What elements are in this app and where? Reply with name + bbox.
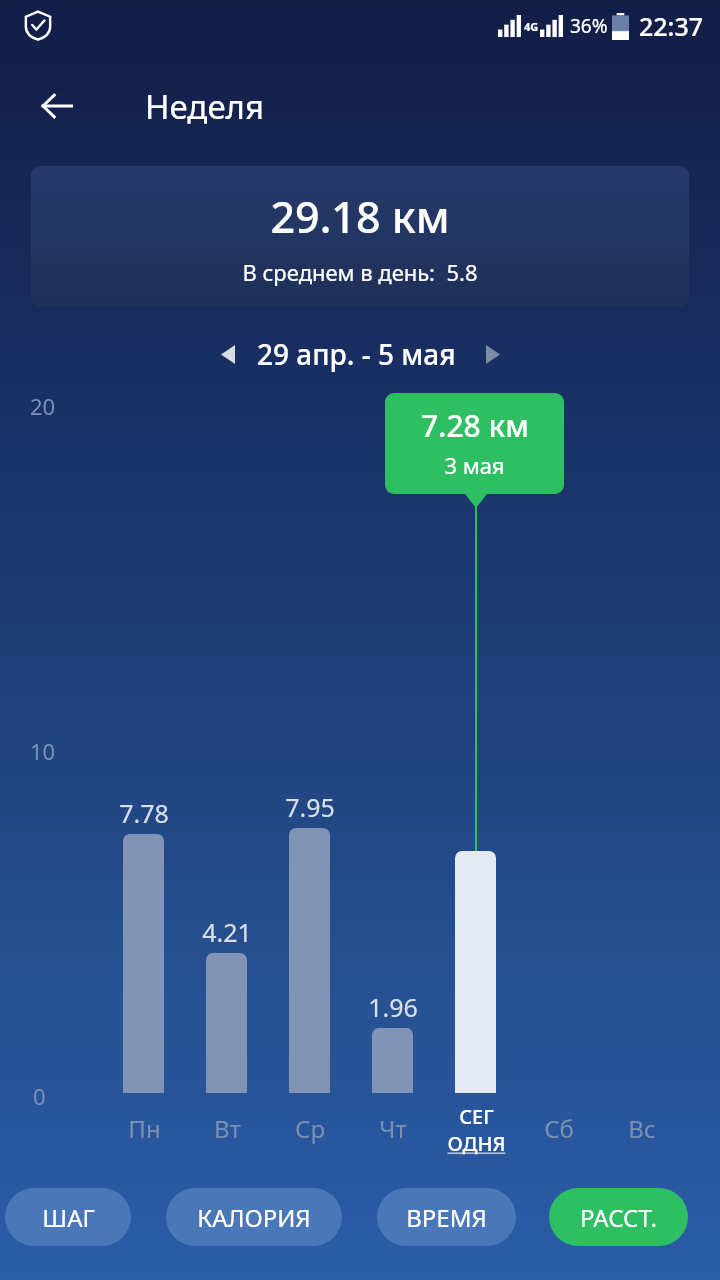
staticText: 1.96 <box>368 990 418 1024</box>
button[interactable] <box>372 1028 413 1093</box>
button[interactable]: Предыдущая неделя <box>205 331 251 377</box>
button[interactable] <box>455 851 496 1093</box>
staticText: Чт <box>379 1112 407 1145</box>
staticText: 4G <box>524 19 539 34</box>
button[interactable] <box>206 953 247 1093</box>
staticText: Ср <box>295 1112 325 1145</box>
staticText: 29.18 км <box>270 187 450 246</box>
staticText: 22:37 <box>639 9 704 43</box>
staticText: 4.21 <box>202 915 252 949</box>
staticText: Вт <box>214 1112 241 1145</box>
staticText: 20 <box>30 391 56 421</box>
button[interactable]: 29.18 км <box>31 166 689 307</box>
button[interactable]: ВРЕМЯ <box>377 1188 516 1246</box>
staticText: ВРЕМЯ <box>406 1201 487 1234</box>
staticText: ШАГ <box>42 1201 95 1234</box>
button[interactable]: РАССТ. <box>549 1188 688 1246</box>
staticText: 7.95 <box>285 790 335 824</box>
button[interactable]: Назад <box>26 75 88 137</box>
staticText: КАЛОРИЯ <box>197 1201 311 1234</box>
staticText: 7.28 км <box>421 405 529 446</box>
staticText: Неделя <box>145 84 264 129</box>
button[interactable]: 7.28 км <box>385 393 564 494</box>
staticText: 0 <box>33 1081 46 1111</box>
staticText: 29 апр. - 5 мая <box>257 335 456 373</box>
staticText: 3 мая <box>444 450 505 480</box>
staticText: РАССТ. <box>580 1201 657 1234</box>
staticText: ОДНЯ <box>447 1130 506 1157</box>
button[interactable] <box>123 834 164 1093</box>
button[interactable] <box>289 828 330 1093</box>
staticText: 7.78 <box>119 796 169 830</box>
staticText: Пн <box>128 1112 161 1145</box>
staticText: 36% <box>570 13 608 39</box>
staticText: Сб <box>544 1112 574 1145</box>
staticText: СЕГ <box>459 1103 494 1130</box>
staticText: В среднем в день: 5.8 <box>242 257 478 287</box>
button[interactable]: ШАГ <box>5 1188 131 1246</box>
staticText: Вс <box>628 1112 656 1145</box>
button[interactable]: КАЛОРИЯ <box>166 1188 342 1246</box>
staticText: 10 <box>30 736 56 766</box>
button[interactable]: Следующая неделя <box>470 331 516 377</box>
